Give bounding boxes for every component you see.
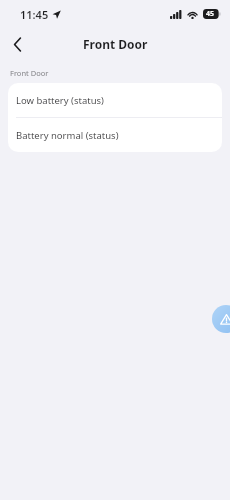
button[interactable]: Warning — [212, 305, 230, 333]
button[interactable]: Back — [0, 28, 34, 60]
button[interactable]: Low battery (status) — [8, 83, 222, 117]
staticText: 45 — [206, 9, 215, 19]
staticText: Battery normal (status) — [16, 129, 119, 142]
button[interactable]: Battery normal (status) — [8, 118, 222, 152]
staticText: Front Door — [10, 68, 49, 78]
staticText: 11:45 — [20, 7, 49, 22]
staticText: Low battery (status) — [16, 94, 104, 107]
staticText: Front Door — [83, 36, 148, 52]
